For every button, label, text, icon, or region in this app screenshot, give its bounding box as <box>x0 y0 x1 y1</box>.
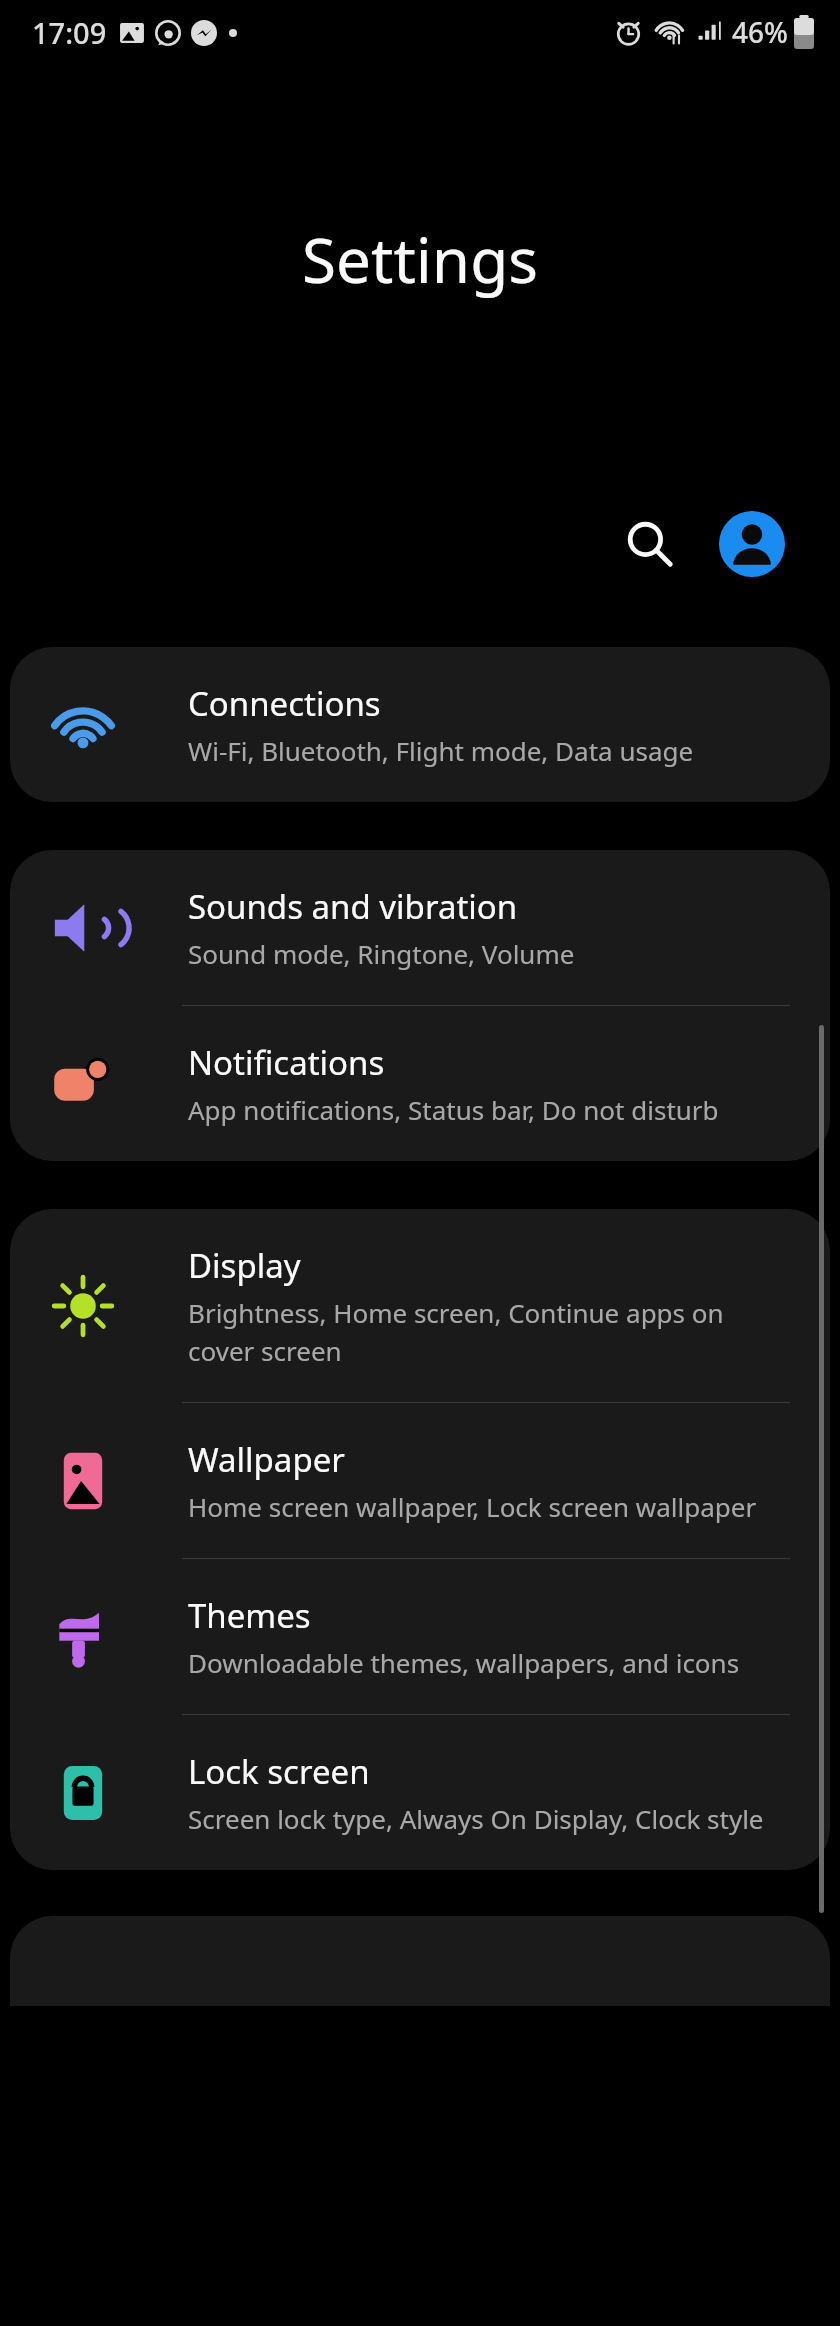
staticText: Settings <box>302 217 538 301</box>
button[interactable]: Notifications <box>10 1006 830 1161</box>
staticText: Lock screen <box>188 1749 370 1794</box>
staticText: Wallpaper <box>188 1437 345 1482</box>
staticText: Downloadable themes, wallpapers, and ico… <box>188 1645 740 1680</box>
button[interactable]: Lock screen <box>10 1715 830 1870</box>
button[interactable]: Connections <box>10 647 830 802</box>
staticText: Themes <box>188 1593 311 1638</box>
button[interactable]: Themes <box>10 1559 830 1714</box>
staticText: Connections <box>188 681 381 726</box>
staticText: Home screen wallpaper, Lock screen wallp… <box>188 1489 757 1524</box>
button[interactable]: Display <box>10 1209 830 1402</box>
staticText: Sounds and vibration <box>188 884 518 929</box>
button[interactable]: Samsung account profile <box>710 502 794 586</box>
button[interactable]: Sounds and vibration <box>10 850 830 1005</box>
staticText: Brightness, Home screen, Continue apps o… <box>188 1295 790 1368</box>
staticText: Sound mode, Ringtone, Volume <box>188 936 575 971</box>
staticText: Display <box>188 1243 301 1288</box>
staticText: Notifications <box>188 1040 385 1085</box>
staticText: 46% <box>732 13 788 51</box>
button[interactable]: Search settings <box>608 502 692 586</box>
button[interactable]: Wallpaper <box>10 1403 830 1558</box>
staticText: App notifications, Status bar, Do not di… <box>188 1092 719 1127</box>
staticText: Wi-Fi, Bluetooth, Flight mode, Data usag… <box>188 733 694 768</box>
staticText: Screen lock type, Always On Display, Clo… <box>188 1801 764 1836</box>
staticText: 17:09 <box>32 13 107 52</box>
